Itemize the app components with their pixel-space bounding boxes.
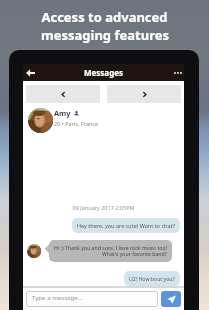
button[interactable]: Type a message... — [26, 291, 158, 307]
button[interactable]: Next — [107, 85, 181, 103]
staticText: Hey there, you are cute! Want to chat? — [77, 222, 175, 229]
staticText: U2! How bout you? — [129, 275, 175, 282]
staticText: Amy — [54, 108, 71, 118]
staticText: Type a message... — [32, 293, 83, 301]
button[interactable]: Previous — [26, 85, 100, 103]
staticText: 09 January 2017 2:05PM — [23, 204, 184, 211]
staticText: Messages — [84, 67, 123, 78]
button[interactable]: Amy — [23, 103, 184, 134]
button[interactable]: Send — [161, 291, 181, 307]
staticText: 20 • Paris, France — [54, 120, 99, 127]
staticText: messaging features — [41, 26, 169, 44]
staticText: Hi :) Thank you and sure, I love rock mu… — [54, 244, 167, 258]
staticText: Access to advanced — [41, 8, 168, 26]
button[interactable]: Back — [23, 66, 37, 80]
button[interactable]: More options — [167, 64, 184, 81]
